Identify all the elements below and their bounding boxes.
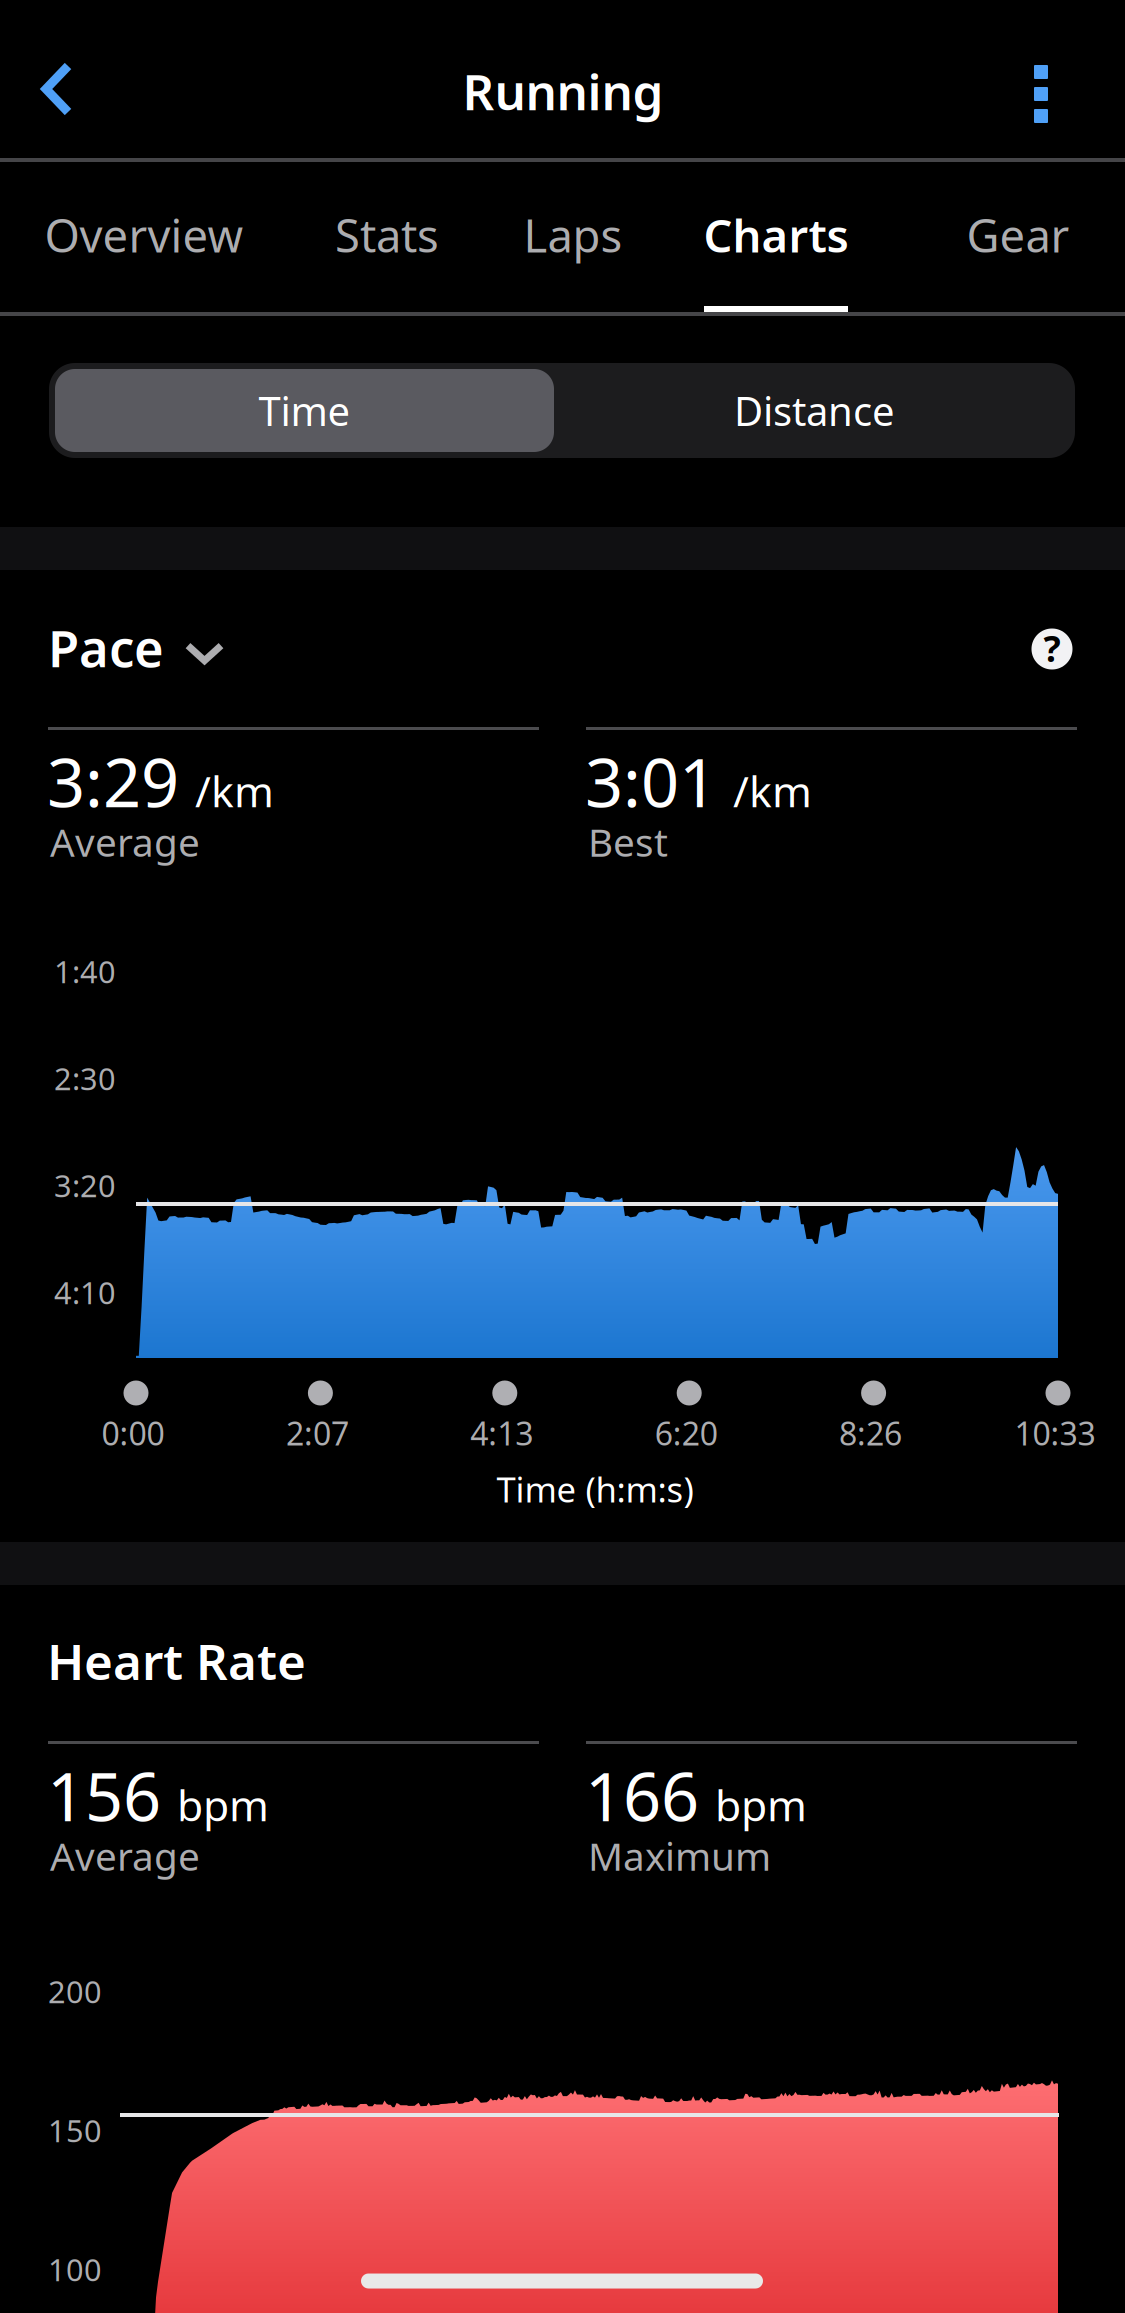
- staticText: 10:33: [1014, 1412, 1095, 1454]
- button[interactable]: Stats: [321, 164, 453, 318]
- staticText: bpm: [177, 1776, 269, 1833]
- staticText: Stats: [335, 205, 439, 265]
- staticText: 100: [48, 2249, 102, 2290]
- staticText: 166: [585, 1751, 699, 1839]
- staticText: 4:13: [470, 1412, 533, 1454]
- staticText: 4:10: [54, 1272, 116, 1313]
- staticText: Running: [462, 58, 663, 124]
- button[interactable]: Laps: [511, 164, 635, 318]
- staticText: 150: [48, 2110, 102, 2151]
- staticText: 2:07: [286, 1412, 349, 1454]
- staticText: 1:40: [54, 951, 116, 992]
- staticText: Pace: [48, 614, 164, 681]
- button[interactable]: More options: [985, 29, 1097, 159]
- staticText: 200: [48, 1971, 102, 2012]
- button[interactable]: Distance: [554, 369, 1075, 452]
- staticText: 0:00: [101, 1412, 164, 1454]
- staticText: Heart Rate: [47, 1628, 306, 1693]
- staticText: ?: [1043, 624, 1060, 672]
- button[interactable]: Time: [55, 369, 554, 452]
- staticText: Distance: [734, 384, 895, 437]
- staticText: 3:20: [54, 1165, 116, 1206]
- button[interactable]: Charts: [690, 164, 862, 318]
- staticText: Overview: [44, 205, 243, 265]
- staticText: Time: [258, 384, 350, 437]
- button[interactable]: Back: [0, 24, 121, 154]
- staticText: 2:30: [54, 1058, 116, 1099]
- staticText: /km: [195, 762, 274, 819]
- button[interactable]: Pace: [38, 596, 231, 699]
- staticText: 156: [47, 1751, 161, 1839]
- button[interactable]: About pace: [1004, 601, 1100, 697]
- staticText: Time (h:m:s): [496, 1466, 693, 1512]
- staticText: bpm: [715, 1776, 807, 1833]
- staticText: 6:20: [655, 1412, 718, 1454]
- button[interactable]: Overview: [34, 164, 254, 318]
- button[interactable]: Gear: [957, 164, 1079, 318]
- staticText: Gear: [966, 205, 1069, 265]
- staticText: Best: [588, 816, 668, 867]
- staticText: 3:29: [47, 737, 179, 825]
- staticText: /km: [733, 762, 812, 819]
- staticText: Laps: [523, 205, 622, 265]
- staticText: Average: [50, 816, 200, 867]
- staticText: Charts: [703, 205, 848, 265]
- staticText: 3:01: [585, 737, 717, 825]
- staticText: Maximum: [588, 1830, 771, 1881]
- staticText: 8:26: [839, 1412, 902, 1454]
- staticText: Average: [50, 1830, 200, 1881]
